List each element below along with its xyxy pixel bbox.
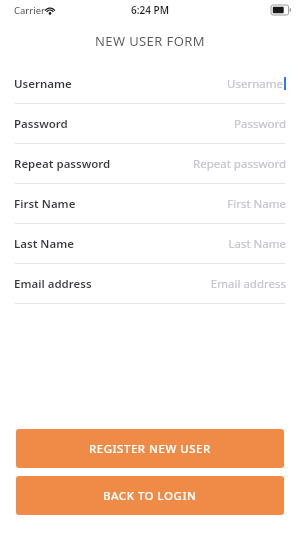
staticText: First Name — [14, 196, 76, 212]
button[interactable]: BACK TO LOGIN — [16, 476, 284, 515]
staticText: Password — [14, 116, 68, 132]
staticText: Username — [227, 76, 283, 92]
staticText: Last Name — [14, 236, 74, 252]
staticText: First Name — [227, 196, 286, 212]
staticText: BACK TO LOGIN — [103, 488, 197, 504]
button[interactable]: First Name — [0, 184, 300, 223]
staticText: REGISTER NEW USER — [89, 441, 211, 457]
button[interactable]: Repeat password — [0, 144, 300, 183]
button[interactable]: Password — [0, 104, 300, 143]
staticText: 6:24 PM — [131, 3, 169, 17]
button[interactable]: Last Name — [0, 224, 300, 263]
staticText: NEW USER FORM — [95, 32, 205, 50]
staticText: Username — [14, 76, 72, 92]
staticText: Carrier — [14, 4, 45, 17]
button[interactable]: Username — [0, 64, 300, 103]
staticText: Email address — [210, 276, 286, 292]
staticText: Email address — [14, 276, 92, 292]
staticText: Repeat password — [193, 156, 286, 172]
button[interactable]: REGISTER NEW USER — [16, 429, 284, 468]
staticText: Password — [233, 116, 286, 132]
staticText: Last Name — [228, 236, 286, 252]
button[interactable]: Email address — [0, 264, 300, 303]
staticText: Repeat password — [14, 156, 111, 172]
